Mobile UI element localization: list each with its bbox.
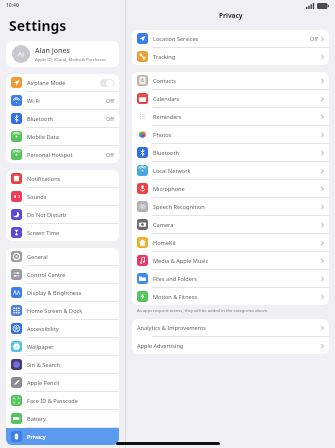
staticText: Calendars [153,95,180,103]
staticText: Reminders [153,113,182,121]
button[interactable]: Camera [132,216,329,233]
staticText: Motion & Fitness [153,293,198,301]
staticText: General [27,253,48,261]
staticText: Accessibility [27,325,59,333]
staticText: Battery [27,415,47,423]
staticText: Control Centre [27,271,66,279]
staticText: AJ [18,50,24,58]
button[interactable]: HomeKit [132,234,329,251]
staticText: Do Not Disturb [27,211,67,219]
staticText: Contacts [153,77,176,85]
button[interactable]: Accessibility [6,320,119,337]
staticText: Settings [9,16,67,35]
staticText: Siri & Search [27,361,60,369]
staticText: 10:40 [6,2,19,9]
button[interactable]: Do Not Disturb [6,206,119,223]
staticText: Media & Apple Music [153,257,209,265]
staticText: Off [310,35,318,42]
button[interactable]: General [6,248,119,265]
button[interactable]: Motion & Fitness [132,288,329,305]
staticText: Home Screen & Dock [27,307,83,315]
button[interactable]: Speech Recognition [132,198,329,215]
button[interactable]: Tracking [132,48,329,65]
staticText: Privacy [219,11,243,20]
staticText: Display & Brightness [27,289,82,297]
button[interactable]: Sounds [6,188,119,205]
staticText: Personal Hotspot [27,151,73,159]
button[interactable]: Apple Advertising [132,337,329,354]
staticText: Analytics & Improvements [137,324,206,332]
button[interactable]: Media & Apple Music [132,252,329,269]
staticText: Privacy [27,433,46,441]
button[interactable]: Display & Brightness [6,284,119,301]
button[interactable]: Screen Time [6,224,119,241]
button[interactable]: Face ID & Passcode [6,392,119,409]
button[interactable]: Microphone [132,180,329,197]
staticText: Speech Recognition [153,203,205,211]
staticText: HomeKit [153,239,176,247]
button[interactable]: Files and Folders [132,270,329,287]
staticText: Wi-Fi [27,97,40,105]
staticText: Face ID & Passcode [27,397,78,405]
staticText: Bluetooth [153,149,179,157]
staticText: Notifications [27,175,61,183]
staticText: Mobile Data [27,133,59,141]
staticText: Off [106,151,114,158]
button[interactable]: Airplane Mode [6,74,119,91]
staticText: Location Services [153,35,199,43]
staticText: Files and Folders [153,275,197,283]
button[interactable]: AJ [6,41,119,67]
staticText: Off [106,97,114,104]
button[interactable]: Reminders [132,108,329,125]
button[interactable]: Local Network [132,162,329,179]
button[interactable]: Battery [6,410,119,427]
staticText: Sounds [27,193,47,201]
button[interactable]: Control Centre [6,266,119,283]
button[interactable]: Personal Hotspot [6,146,119,163]
button[interactable]: Bluetooth [132,144,329,161]
button[interactable]: Location Services [132,30,329,47]
button[interactable]: Home Screen & Dock [6,302,119,319]
staticText: Camera [153,221,174,229]
button[interactable]: Analytics & Improvements [132,319,329,336]
button[interactable]: Siri & Search [6,356,119,373]
staticText: Wallpaper [27,343,54,351]
staticText: Microphone [153,185,185,193]
staticText: Screen Time [27,229,60,237]
staticText: Local Network [153,167,191,175]
staticText: Photos [153,131,172,139]
staticText: Apple ID, iCloud, Media & Purchases [35,57,107,63]
staticText: Apple Pencil [27,379,60,387]
button[interactable]: Privacy [6,428,119,445]
staticText: As apps request access, they will be add… [137,308,269,314]
button[interactable]: Calendars [132,90,329,107]
button[interactable]: Wallpaper [6,338,119,355]
button[interactable]: Contacts [132,72,329,89]
staticText: Airplane Mode [27,79,66,87]
staticText: Off [106,115,114,122]
staticText: Bluetooth [27,115,53,123]
button[interactable] [100,79,114,87]
staticText: Tracking [153,53,176,61]
button[interactable]: Wi-Fi [6,92,119,109]
staticText: Apple Advertising [137,342,184,350]
button[interactable]: Photos [132,126,329,143]
staticText: Alan Jones [35,46,70,56]
button[interactable]: Bluetooth [6,110,119,127]
button[interactable]: Notifications [6,170,119,187]
button[interactable]: Apple Pencil [6,374,119,391]
button[interactable]: Mobile Data [6,128,119,145]
